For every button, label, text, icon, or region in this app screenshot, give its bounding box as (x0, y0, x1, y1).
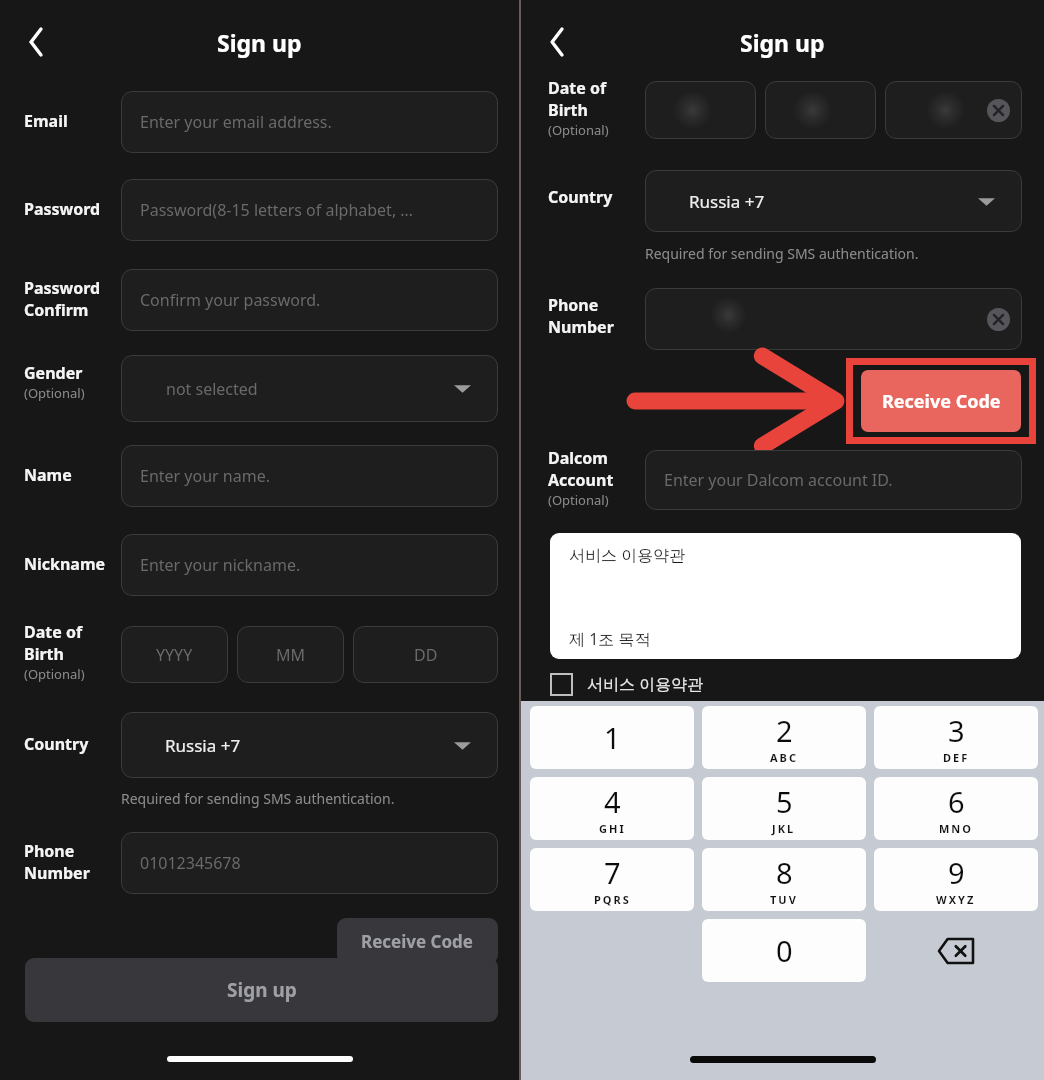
button[interactable]: Russia +7 (121, 712, 498, 778)
staticText: Password(8-15 letters of alphabet, … (140, 199, 413, 221)
button[interactable]: Clear (987, 308, 1010, 331)
button[interactable]: 5 (702, 777, 866, 840)
staticText: Birth (24, 643, 64, 665)
button[interactable]: 4 (530, 777, 694, 840)
button[interactable]: Enter your Dalcom account ID. (645, 450, 1022, 510)
staticText: Russia +7 (165, 734, 241, 757)
staticText: Password (24, 198, 101, 220)
staticText: Enter your email address. (140, 111, 332, 133)
staticText: not selected (166, 378, 258, 400)
button[interactable]: not selected (121, 355, 498, 422)
button[interactable]: Receive Code (337, 918, 498, 964)
staticText: Required for sending SMS authentication. (645, 244, 919, 263)
button[interactable]: 서비스 이용약관 (550, 533, 1021, 659)
staticText: 7 (604, 853, 621, 892)
button[interactable]: Clear (885, 81, 1022, 139)
staticText: WXYZ (936, 892, 976, 907)
button[interactable]: Backspace (874, 919, 1038, 982)
staticText: 서비스 이용약관 (587, 673, 704, 695)
staticText: JKL (772, 821, 796, 836)
staticText: 0 (776, 931, 793, 970)
button[interactable]: Enter your email address. (121, 91, 498, 153)
button[interactable]: Confirm your password. (121, 269, 498, 331)
staticText: 9 (948, 853, 965, 892)
staticText: 1 (604, 718, 621, 757)
staticText: Receive Code (882, 389, 1001, 414)
staticText: GHI (599, 821, 626, 836)
staticText: PQRS (594, 892, 631, 907)
button[interactable]: Back (14, 20, 58, 64)
button[interactable]: 서비스 이용약관 (550, 669, 704, 699)
button[interactable]: Password(8-15 letters of alphabet, … (121, 179, 498, 241)
button[interactable]: 3 (874, 706, 1038, 769)
button[interactable]: 6 (874, 777, 1038, 840)
button[interactable]: Enter your nickname. (121, 534, 498, 596)
staticText: Dalcom (548, 447, 608, 469)
staticText: Enter your nickname. (140, 554, 301, 576)
staticText: Enter your Dalcom account ID. (664, 469, 893, 491)
staticText: Account (548, 469, 614, 491)
staticText: ABC (770, 750, 798, 765)
staticText: 4 (604, 782, 621, 821)
staticText: Sign up (217, 27, 302, 58)
staticText: Birth (548, 99, 588, 121)
button[interactable]: Clear (987, 99, 1010, 122)
button[interactable]: Enter your name. (121, 445, 498, 507)
button[interactable]: Back (535, 20, 579, 64)
button[interactable] (645, 81, 756, 139)
button[interactable]: 1 (530, 706, 694, 769)
staticText: Name (24, 464, 72, 486)
staticText: 01012345678 (140, 852, 241, 874)
button[interactable]: Clear (645, 288, 1022, 350)
staticText: DD (414, 644, 438, 666)
staticText: Receive Code (361, 930, 474, 953)
staticText: (Optional) (24, 665, 85, 683)
staticText: Number (548, 316, 614, 338)
staticText: TUV (770, 892, 798, 907)
button[interactable]: 2 (702, 706, 866, 769)
staticText: Nickname (24, 553, 106, 575)
button[interactable]: MM (237, 626, 344, 683)
staticText: 서비스 이용약관 (569, 544, 686, 566)
staticText: Date of (24, 621, 83, 643)
staticText: Sign up (227, 977, 297, 1003)
staticText: (Optional) (548, 121, 609, 139)
button[interactable] (765, 81, 876, 139)
staticText: Phone (548, 294, 599, 316)
staticText: Required for sending SMS authentication. (121, 789, 395, 808)
staticText: 8 (776, 853, 793, 892)
button[interactable]: Receive Code (861, 370, 1021, 432)
staticText: Russia +7 (689, 190, 765, 213)
button[interactable]: YYYY (121, 626, 228, 683)
staticText: YYYY (156, 644, 193, 666)
staticText: Enter your name. (140, 465, 270, 487)
staticText: Phone (24, 840, 75, 862)
button[interactable]: 0 (702, 919, 866, 982)
staticText: MM (276, 644, 306, 666)
staticText: Date of (548, 77, 607, 99)
button[interactable]: 9 (874, 848, 1038, 911)
staticText: Sign up (740, 27, 825, 58)
staticText: Password (24, 277, 101, 299)
button[interactable]: 8 (702, 848, 866, 911)
staticText: Confirm (24, 299, 89, 321)
staticText: DEF (943, 750, 970, 765)
button[interactable]: 01012345678 (121, 832, 498, 894)
button[interactable]: Russia +7 (645, 170, 1022, 232)
staticText: (Optional) (24, 384, 85, 402)
staticText: Email (24, 110, 68, 132)
staticText: Number (24, 862, 90, 884)
staticText: Gender (24, 362, 83, 384)
staticText: 제 1조 목적 (569, 628, 651, 650)
button[interactable]: Sign up (25, 958, 498, 1022)
staticText: Country (548, 186, 613, 208)
staticText: Country (24, 733, 89, 755)
staticText: 3 (948, 711, 965, 750)
staticText: 5 (776, 782, 793, 821)
staticText: Confirm your password. (140, 289, 321, 311)
staticText: MNO (939, 821, 974, 836)
staticText: 2 (776, 711, 793, 750)
staticText: (Optional) (548, 491, 609, 509)
button[interactable]: 7 (530, 848, 694, 911)
button[interactable]: DD (353, 626, 498, 683)
